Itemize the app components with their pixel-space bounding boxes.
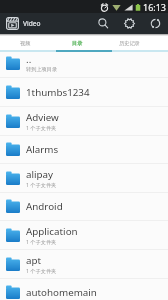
staticText: Application [26, 225, 78, 238]
button[interactable]: App icon [6, 17, 19, 30]
button[interactable]: autohomemain [0, 278, 168, 300]
staticText: 1 个子文件夹 [26, 238, 57, 245]
button[interactable]: 视频 [0, 36, 51, 50]
staticText: 1 个子文件夹 [26, 181, 57, 188]
button[interactable]: Search [90, 13, 116, 34]
button[interactable]: Alarms [0, 135, 168, 164]
button[interactable]: Settings [116, 13, 142, 34]
button[interactable]: Application [0, 221, 168, 250]
staticText: 16:13 [143, 1, 167, 13]
button[interactable]: apt [0, 250, 168, 279]
button[interactable]: 1thumbs1234 [0, 78, 168, 107]
staticText: alipay [26, 168, 54, 181]
button[interactable]: Adview [0, 107, 168, 136]
staticText: 视频 [20, 40, 31, 47]
staticText: 1 个子文件夹 [26, 124, 57, 131]
button[interactable]: 历史记录 [103, 36, 155, 50]
staticText: autohomemain [26, 286, 97, 299]
staticText: 目录 [72, 40, 83, 47]
button[interactable]: .. [0, 49, 168, 78]
staticText: Android [26, 200, 63, 213]
staticText: Alarms [26, 143, 59, 156]
staticText: 1 个子文件夹 [26, 267, 57, 274]
button[interactable]: Refresh [142, 13, 168, 34]
staticText: 历史记录 [119, 40, 140, 47]
button[interactable]: alipay [0, 164, 168, 193]
staticText: Adview [26, 111, 59, 124]
button[interactable]: Android [0, 192, 168, 221]
staticText: 转到上项目录 [26, 66, 58, 73]
staticText: apt [26, 254, 42, 267]
staticText: Video [23, 19, 41, 28]
staticText: .. [26, 53, 32, 66]
staticText: 1thumbs1234 [26, 86, 90, 99]
button[interactable]: 目录 [51, 36, 103, 50]
